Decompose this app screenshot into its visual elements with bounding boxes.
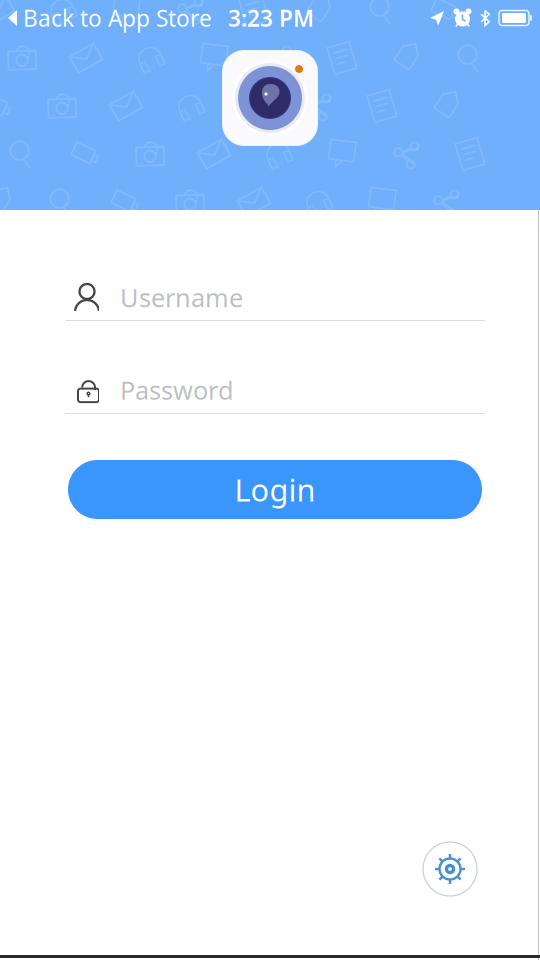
staticText: Password xyxy=(120,373,234,407)
staticText: Login xyxy=(234,469,315,510)
button[interactable]: Username xyxy=(99,259,440,322)
button[interactable]: Settings xyxy=(422,841,478,897)
button[interactable]: Password xyxy=(99,339,440,415)
button[interactable]: Back to App Store xyxy=(0,0,212,37)
staticText: Back to App Store xyxy=(23,3,212,33)
staticText: 3:23 PM xyxy=(228,3,314,33)
button[interactable]: Login xyxy=(68,460,482,519)
staticText: Username xyxy=(120,281,243,314)
